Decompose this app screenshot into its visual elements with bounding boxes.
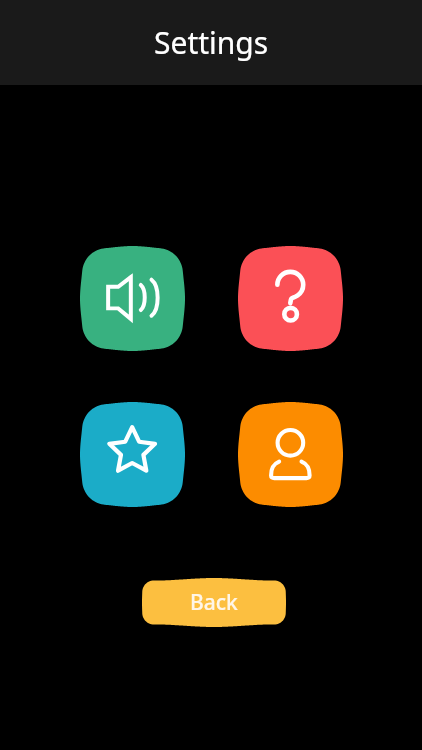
button[interactable]: Back [142,578,286,627]
button[interactable]: Help [238,246,343,351]
button[interactable]: Volume [80,246,185,351]
button[interactable]: Account [238,402,343,507]
staticText: Back [190,588,238,617]
button[interactable]: Favourites [80,402,185,507]
staticText: Settings [154,22,269,63]
